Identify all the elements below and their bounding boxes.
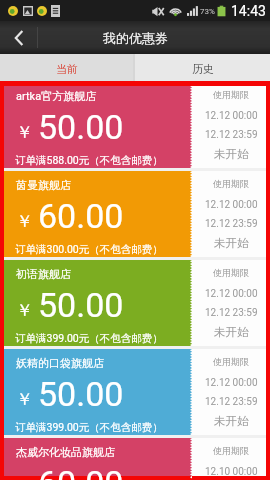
staticText: 12.12 00:00 — [205, 110, 258, 122]
staticText: 未开始 — [214, 236, 249, 250]
staticText: 12.12 23:59 — [205, 396, 258, 408]
staticText: 茵曼旗舰店 — [16, 178, 71, 192]
staticText: 使用期限 — [213, 89, 249, 100]
staticText: 初语旗舰店 — [16, 267, 71, 281]
staticText: 60.00 — [38, 196, 124, 236]
staticText: 未开始 — [214, 325, 249, 339]
staticText: 12.12 23:59 — [205, 129, 258, 141]
staticText: 使用期限 — [213, 178, 249, 189]
staticText: 12.10 00:00 — [205, 466, 258, 476]
button[interactable]: 妖精的口袋旗舰店 — [4, 349, 266, 435]
staticText: 使用期限 — [213, 267, 249, 278]
staticText: 当前 — [56, 62, 78, 76]
staticText: ￥ — [16, 389, 33, 410]
staticText: 我的优惠券 — [103, 30, 168, 46]
button[interactable]: 当前 — [0, 54, 133, 81]
button[interactable]: Back — [0, 21, 37, 54]
button[interactable]: 历史 — [135, 54, 270, 81]
button[interactable]: 茵曼旗舰店 — [4, 171, 266, 257]
staticText: 杰威尔化妆品旗舰店 — [16, 445, 115, 459]
staticText: ￥ — [16, 211, 33, 232]
staticText: 50.00 — [38, 107, 124, 147]
staticText: 历史 — [192, 62, 214, 76]
staticText: 妖精的口袋旗舰店 — [16, 356, 104, 370]
staticText: 60.00 — [38, 463, 124, 480]
staticText: 50.00 — [38, 285, 124, 325]
staticText: 12.12 00:00 — [205, 288, 258, 300]
staticText: 未开始 — [214, 147, 249, 161]
button[interactable]: 初语旗舰店 — [4, 260, 266, 346]
staticText: 14:43 — [231, 3, 266, 19]
staticText: 12.12 23:59 — [205, 218, 258, 230]
staticText: 未开始 — [214, 414, 249, 428]
staticText: 订单满399.00元（不包含邮费） — [15, 332, 163, 345]
staticText: ￥ — [16, 122, 33, 143]
staticText: 订单满399.00元（不包含邮费） — [15, 421, 163, 434]
staticText: artka官方旗舰店 — [16, 89, 97, 103]
staticText: 使用期限 — [213, 356, 249, 367]
staticText: 12.12 00:00 — [205, 199, 258, 211]
staticText: 使用期限 — [213, 445, 249, 456]
staticText: 订单满300.00元（不包含邮费） — [15, 243, 163, 256]
staticText: 12.12 00:00 — [205, 377, 258, 389]
staticText: 50.00 — [38, 374, 124, 414]
staticText: 订单满588.00元（不包含邮费） — [15, 154, 163, 167]
staticText: 12.12 23:59 — [205, 307, 258, 319]
staticText: 73% — [200, 7, 215, 16]
button[interactable]: artka官方旗舰店 — [4, 86, 266, 168]
staticText: ￥ — [16, 300, 33, 321]
button[interactable]: 杰威尔化妆品旗舰店 — [4, 438, 266, 476]
